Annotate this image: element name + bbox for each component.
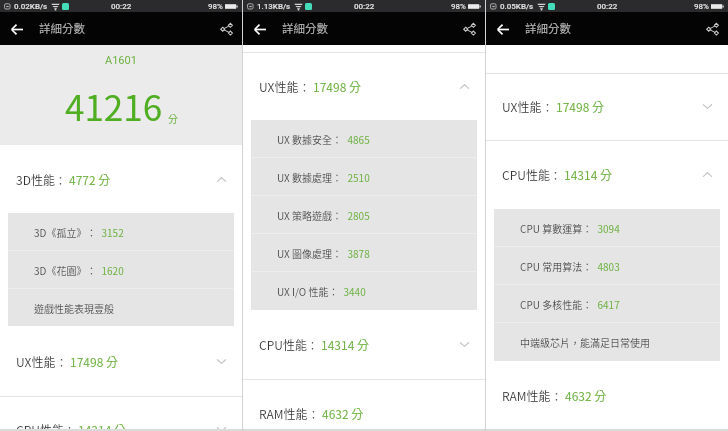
staticText: 6417: [593, 297, 620, 311]
staticText: CPU 常用算法：: [520, 259, 593, 273]
staticText: 0.05KB/s: [500, 2, 534, 11]
staticText: 3878: [343, 246, 370, 260]
staticText: RAM性能: [259, 405, 308, 422]
staticText: ：: [307, 337, 318, 353]
button[interactable]: UX 圖像處理：: [251, 234, 477, 272]
button[interactable]: CPU性能: [0, 396, 242, 431]
button[interactable]: UX性能: [486, 73, 728, 140]
staticText: 00:22: [597, 2, 618, 11]
button[interactable]: CPU 算數運算：: [494, 209, 720, 247]
staticText: UX 數據安全：: [277, 132, 343, 146]
button[interactable]: Share: [215, 18, 237, 40]
staticText: 4865: [343, 132, 370, 146]
staticText: 98%: [208, 2, 223, 11]
staticText: 詳細分數: [282, 20, 328, 37]
staticText: 分: [168, 111, 178, 125]
button[interactable]: CPU性能: [486, 140, 728, 209]
staticText: 中端級芯片，能滿足日常使用: [520, 335, 650, 349]
button[interactable]: UX性能: [243, 52, 485, 120]
staticText: ：: [299, 79, 310, 95]
staticText: 4772 分: [69, 171, 111, 188]
staticText: CPU性能: [16, 421, 64, 431]
button[interactable]: UX 策略遊戲：: [251, 196, 477, 234]
button[interactable]: UX I/O 性能：: [251, 272, 477, 310]
staticText: 00:22: [354, 2, 375, 11]
staticText: ：: [551, 388, 562, 404]
staticText: 17498 分: [556, 98, 604, 115]
button[interactable]: RAM性能: [243, 379, 485, 431]
button[interactable]: CPU性能: [243, 310, 485, 379]
button[interactable]: UX性能: [0, 326, 242, 396]
staticText: CPU 算數運算：: [520, 221, 593, 235]
staticText: UX I/O 性能：: [277, 284, 339, 298]
staticText: 17498 分: [313, 78, 361, 95]
staticText: 17498 分: [70, 353, 118, 370]
staticText: ：: [308, 406, 319, 422]
staticText: 00:22: [111, 2, 132, 11]
staticText: 2510: [343, 170, 370, 184]
button[interactable]: 3D《花園》：: [8, 251, 234, 289]
staticText: 0.02KB/s: [14, 2, 48, 11]
staticText: 詳細分數: [39, 20, 85, 37]
staticText: 詳細分數: [525, 20, 571, 37]
staticText: RAM性能: [502, 387, 551, 404]
staticText: 14314 分: [78, 421, 126, 431]
button[interactable]: Share: [458, 18, 480, 40]
staticText: 98%: [451, 2, 466, 11]
button[interactable]: 中端級芯片，能滿足日常使用: [494, 323, 720, 361]
button[interactable]: 3D性能: [0, 145, 242, 213]
staticText: UX性能: [16, 353, 56, 370]
button[interactable]: 3D《孤立》：: [8, 213, 234, 251]
button[interactable]: Share: [701, 18, 723, 40]
staticText: ：: [55, 172, 66, 188]
staticText: UX 數據處理：: [277, 170, 343, 184]
staticText: 14314 分: [564, 166, 612, 183]
staticText: UX 圖像處理：: [277, 246, 343, 260]
button[interactable]: 遊戲性能表現壹般: [8, 289, 234, 326]
staticText: 3D性能: [16, 171, 55, 188]
staticText: CPU 多核性能：: [520, 297, 593, 311]
staticText: 遊戲性能表現壹般: [34, 301, 114, 315]
staticText: ：: [550, 167, 561, 183]
button[interactable]: Back: [248, 17, 272, 41]
staticText: ：: [542, 99, 553, 115]
button[interactable]: CPU 多核性能：: [494, 285, 720, 323]
staticText: 98%: [694, 2, 709, 11]
button[interactable]: Back: [491, 17, 515, 41]
staticText: UX性能: [259, 78, 299, 95]
staticText: 3440: [339, 284, 366, 298]
staticText: 3D《花園》：: [34, 263, 97, 277]
staticText: 41216: [65, 80, 163, 131]
staticText: ：: [56, 354, 67, 370]
staticText: 3152: [97, 225, 124, 239]
staticText: CPU性能: [259, 336, 307, 353]
button[interactable]: UX 數據處理：: [251, 158, 477, 196]
button[interactable]: CPU 常用算法：: [494, 247, 720, 285]
staticText: UX性能: [502, 98, 542, 115]
staticText: 14314 分: [321, 336, 369, 353]
staticText: 4632 分: [322, 405, 364, 422]
button[interactable]: UX 數據安全：: [251, 120, 477, 158]
button[interactable]: Back: [5, 17, 29, 41]
staticText: CPU性能: [502, 166, 550, 183]
staticText: UX 策略遊戲：: [277, 208, 343, 222]
button[interactable]: RAM性能: [486, 361, 728, 429]
staticText: 3094: [593, 221, 620, 235]
staticText: 1.13KB/s: [257, 2, 291, 11]
staticText: A1601: [105, 54, 137, 67]
staticText: 4803: [593, 259, 620, 273]
staticText: 2805: [343, 208, 370, 222]
staticText: 1620: [97, 263, 124, 277]
staticText: ：: [64, 422, 75, 431]
staticText: 4632 分: [565, 387, 607, 404]
staticText: 3D《孤立》：: [34, 225, 97, 239]
